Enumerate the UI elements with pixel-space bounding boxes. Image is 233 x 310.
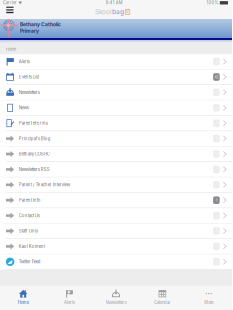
staticText: Bethany Catholic (20, 21, 61, 27)
staticText: Contact Us (19, 213, 40, 218)
staticText: 1 (216, 198, 217, 202)
staticText: More (204, 300, 213, 305)
staticText: Staff Only (19, 228, 38, 234)
staticText: Alerts (19, 59, 30, 64)
staticText: News (19, 105, 29, 110)
staticText: Newsletters (19, 90, 40, 95)
staticText: Events List (19, 74, 39, 80)
button[interactable]: Home (0, 286, 46, 310)
staticText: Bethany COSHC (19, 151, 50, 157)
button[interactable]: Parent / Teacher Interview (0, 177, 232, 193)
staticText: Alerts (64, 300, 75, 305)
button[interactable]: Alerts (0, 54, 232, 70)
button[interactable]: Menu (3, 5, 16, 20)
staticText: 42 (214, 75, 218, 79)
button[interactable]: Staff Only (0, 224, 232, 239)
button[interactable]: Newsletters RSS (0, 162, 232, 177)
staticText: Carrier (3, 0, 17, 5)
staticText: Calendar (154, 300, 171, 305)
button[interactable]: Bethany COSHC (0, 147, 232, 162)
staticText: Parent Info (19, 198, 41, 203)
staticText: Home (6, 47, 16, 52)
staticText: 100% (207, 0, 219, 5)
staticText: Newsletters RSS (19, 167, 50, 172)
staticText: Skool (95, 8, 112, 16)
button[interactable]: Contact Us (0, 208, 232, 224)
button[interactable]: Newsletters (0, 85, 232, 100)
staticText: bag (112, 8, 124, 16)
staticText: 9:41 AM (106, 0, 123, 5)
button[interactable]: Alerts (46, 286, 93, 310)
staticText: Parent eForms (19, 121, 48, 126)
button[interactable]: Events List (0, 70, 232, 85)
button[interactable]: More (186, 286, 232, 310)
staticText: Newsletters (105, 300, 126, 305)
staticText: Kaol Koment (19, 244, 45, 249)
staticText: Primary (20, 28, 39, 34)
button[interactable]: Principal's Blog (0, 131, 232, 147)
button[interactable]: Calendar (139, 286, 186, 310)
button[interactable]: Parent eForms (0, 116, 232, 131)
button[interactable]: Kaol Koment (0, 239, 232, 254)
staticText: Principal's Blog (19, 136, 51, 141)
button[interactable]: News (0, 100, 232, 116)
button[interactable]: Newsletters (93, 286, 139, 310)
staticText: Parent / Teacher Interview (19, 182, 70, 187)
staticText: Home (18, 300, 29, 305)
button[interactable]: Parent Info (0, 193, 232, 208)
staticText: Twitter Feed (19, 259, 41, 264)
button[interactable]: Twitter Feed (0, 254, 232, 270)
